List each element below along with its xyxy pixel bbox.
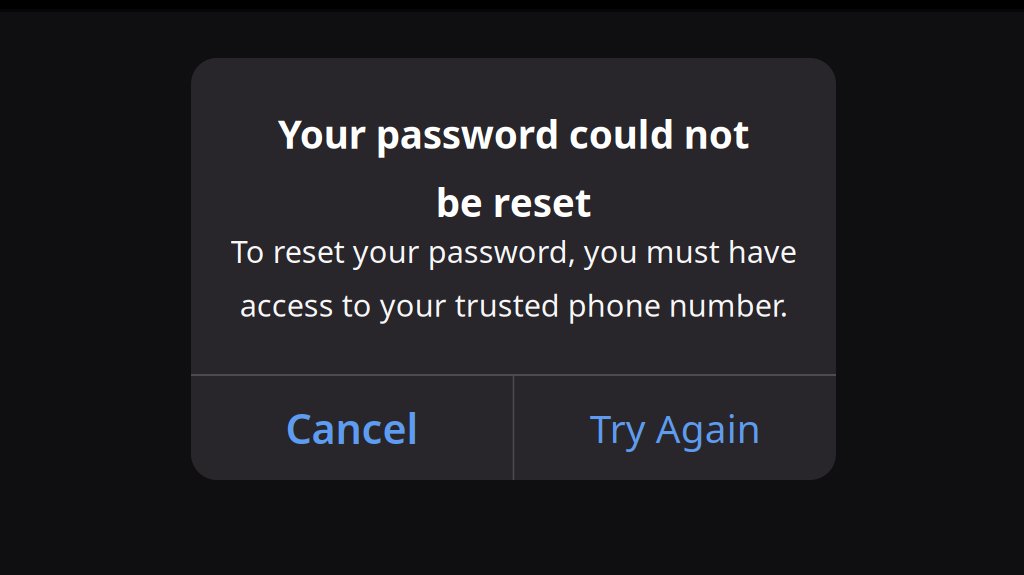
button[interactable]: Cancel xyxy=(191,376,513,480)
button[interactable]: Try Again xyxy=(514,376,836,480)
staticText: Your password could not be reset xyxy=(277,108,749,228)
staticText: To reset your password, you must have ac… xyxy=(230,231,796,325)
staticText: Try Again xyxy=(590,402,761,454)
staticText: Cancel xyxy=(285,401,418,455)
